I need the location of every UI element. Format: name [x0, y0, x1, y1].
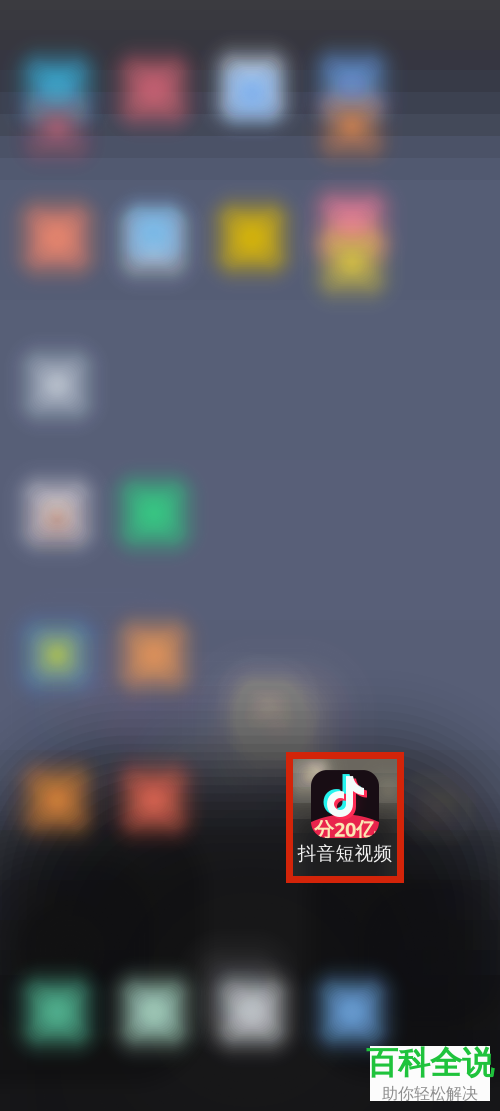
staticText: 分20亿: [314, 816, 376, 842]
staticText: 助你轻松解决: [382, 1084, 478, 1103]
staticText: 抖音短视频: [297, 842, 392, 865]
button[interactable]: 分20亿: [286, 752, 404, 883]
staticText: 百科全说: [366, 1043, 494, 1083]
